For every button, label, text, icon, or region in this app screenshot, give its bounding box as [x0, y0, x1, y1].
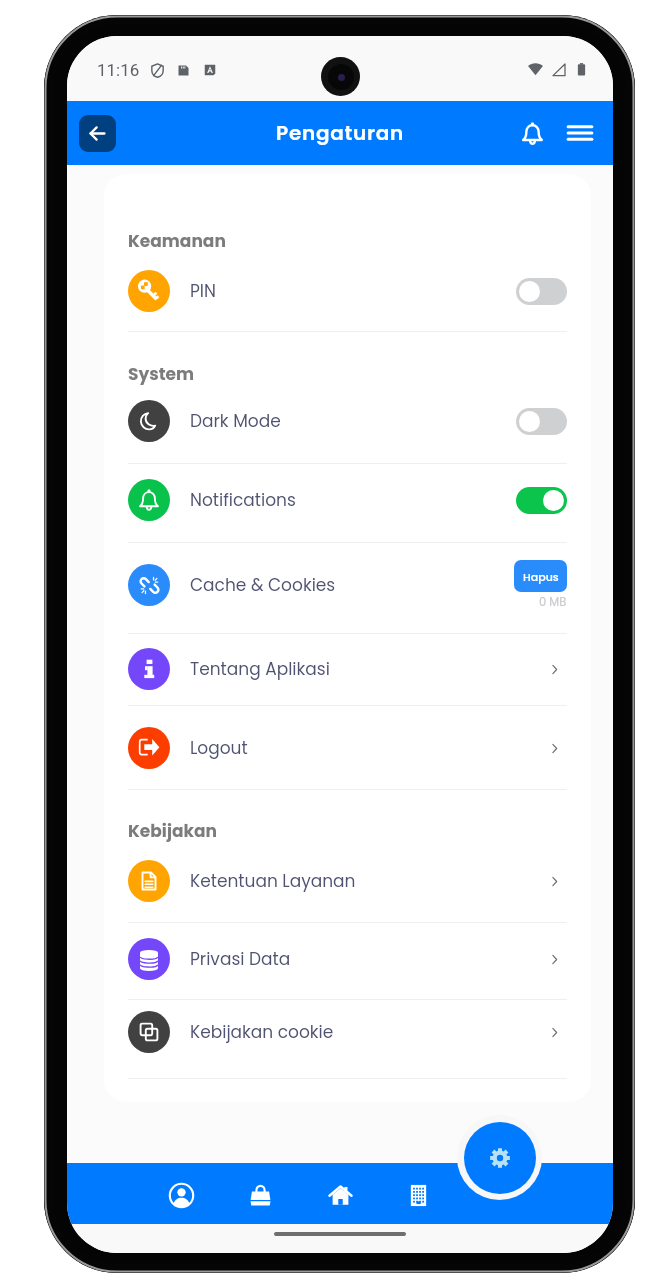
staticText: Dark Mode	[190, 409, 516, 433]
staticText: Privasi Data	[190, 947, 541, 971]
staticText: Kebijakan cookie	[190, 1020, 541, 1044]
button[interactable]: Privasi Data	[128, 930, 567, 988]
staticText: PIN	[190, 279, 516, 303]
staticText: Pengaturan	[276, 119, 404, 147]
button[interactable]: Tentang Aplikasi	[128, 640, 567, 698]
button[interactable]: Shop	[237, 1172, 283, 1218]
button[interactable]: Hapus	[514, 560, 567, 592]
staticText: Hapus	[523, 569, 559, 584]
button[interactable]: Account	[158, 1172, 204, 1218]
button[interactable]: Notifications	[128, 471, 567, 529]
button[interactable]: Home	[317, 1172, 363, 1218]
staticText: Logout	[190, 736, 541, 760]
button[interactable]: Ketentuan Layanan	[128, 852, 567, 910]
button[interactable]: Business	[395, 1172, 441, 1218]
button[interactable]: Back	[79, 115, 116, 152]
button[interactable]: Kebijakan cookie	[128, 1003, 567, 1061]
button[interactable]: PIN	[128, 262, 567, 320]
button[interactable]: Toggle on	[516, 487, 567, 514]
button[interactable]: Toggle off	[516, 408, 567, 435]
button[interactable]: Notifications	[512, 113, 552, 153]
button[interactable]: Cache & Cookies	[128, 556, 567, 614]
staticText: 11:16	[97, 60, 140, 80]
button[interactable]: Logout	[128, 719, 567, 777]
staticText: Ketentuan Layanan	[190, 869, 541, 893]
button[interactable]: Dark Mode	[128, 392, 567, 450]
staticText: Cache & Cookies	[190, 573, 514, 597]
staticText: System	[128, 362, 195, 386]
button[interactable]: Settings	[464, 1122, 536, 1194]
button[interactable]: Menu	[560, 113, 600, 153]
staticText: Kebijakan	[128, 819, 217, 843]
staticText: Keamanan	[128, 229, 226, 253]
staticText: Notifications	[190, 488, 516, 512]
staticText: 0 MB	[539, 594, 567, 610]
staticText: Tentang Aplikasi	[190, 657, 541, 681]
button[interactable]: Toggle off	[516, 278, 567, 305]
